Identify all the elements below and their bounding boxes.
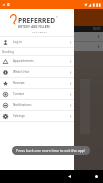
staticText: Settings: [13, 114, 25, 118]
button[interactable]: Special offer: [0, 32, 103, 41]
staticText: Notifications: [13, 103, 32, 107]
staticText: Special offer: [0, 35, 20, 39]
staticText: Press back one more time to exit the app…: [16, 148, 85, 153]
button[interactable]: Home: [45, 170, 103, 183]
button[interactable]: Settings: [0, 111, 74, 121]
button[interactable]: Notifications: [0, 100, 74, 110]
staticText: Contact: [13, 92, 25, 96]
staticText: Log in: [13, 40, 22, 44]
staticText: LAS VEGAS: [18, 30, 61, 33]
staticText: ®: [56, 16, 58, 19]
button[interactable]: Recents: [72, 170, 103, 183]
staticText: PREFERRED: [18, 16, 56, 25]
button[interactable]: What's Hot: [0, 67, 74, 77]
staticText: Appointments: [13, 59, 34, 63]
staticText: MORE: [93, 27, 101, 31]
button[interactable]: Back: [18, 170, 103, 183]
staticText: What's Hot: [13, 70, 29, 74]
button[interactable]: Reviews: [0, 78, 74, 88]
staticText: Special offer: [0, 45, 20, 49]
button[interactable]: Contact: [0, 89, 74, 99]
button[interactable]: Appointments: [0, 56, 74, 66]
staticText: Booking: [2, 50, 15, 54]
button[interactable]: Log in: [0, 37, 74, 47]
button[interactable]: Open navigation drawer: [3, 12, 14, 23]
staticText: Reviews: [13, 81, 25, 85]
staticText: BOTOX® AND FILLERS: [18, 25, 51, 29]
button[interactable]: Special offer: [0, 42, 103, 51]
